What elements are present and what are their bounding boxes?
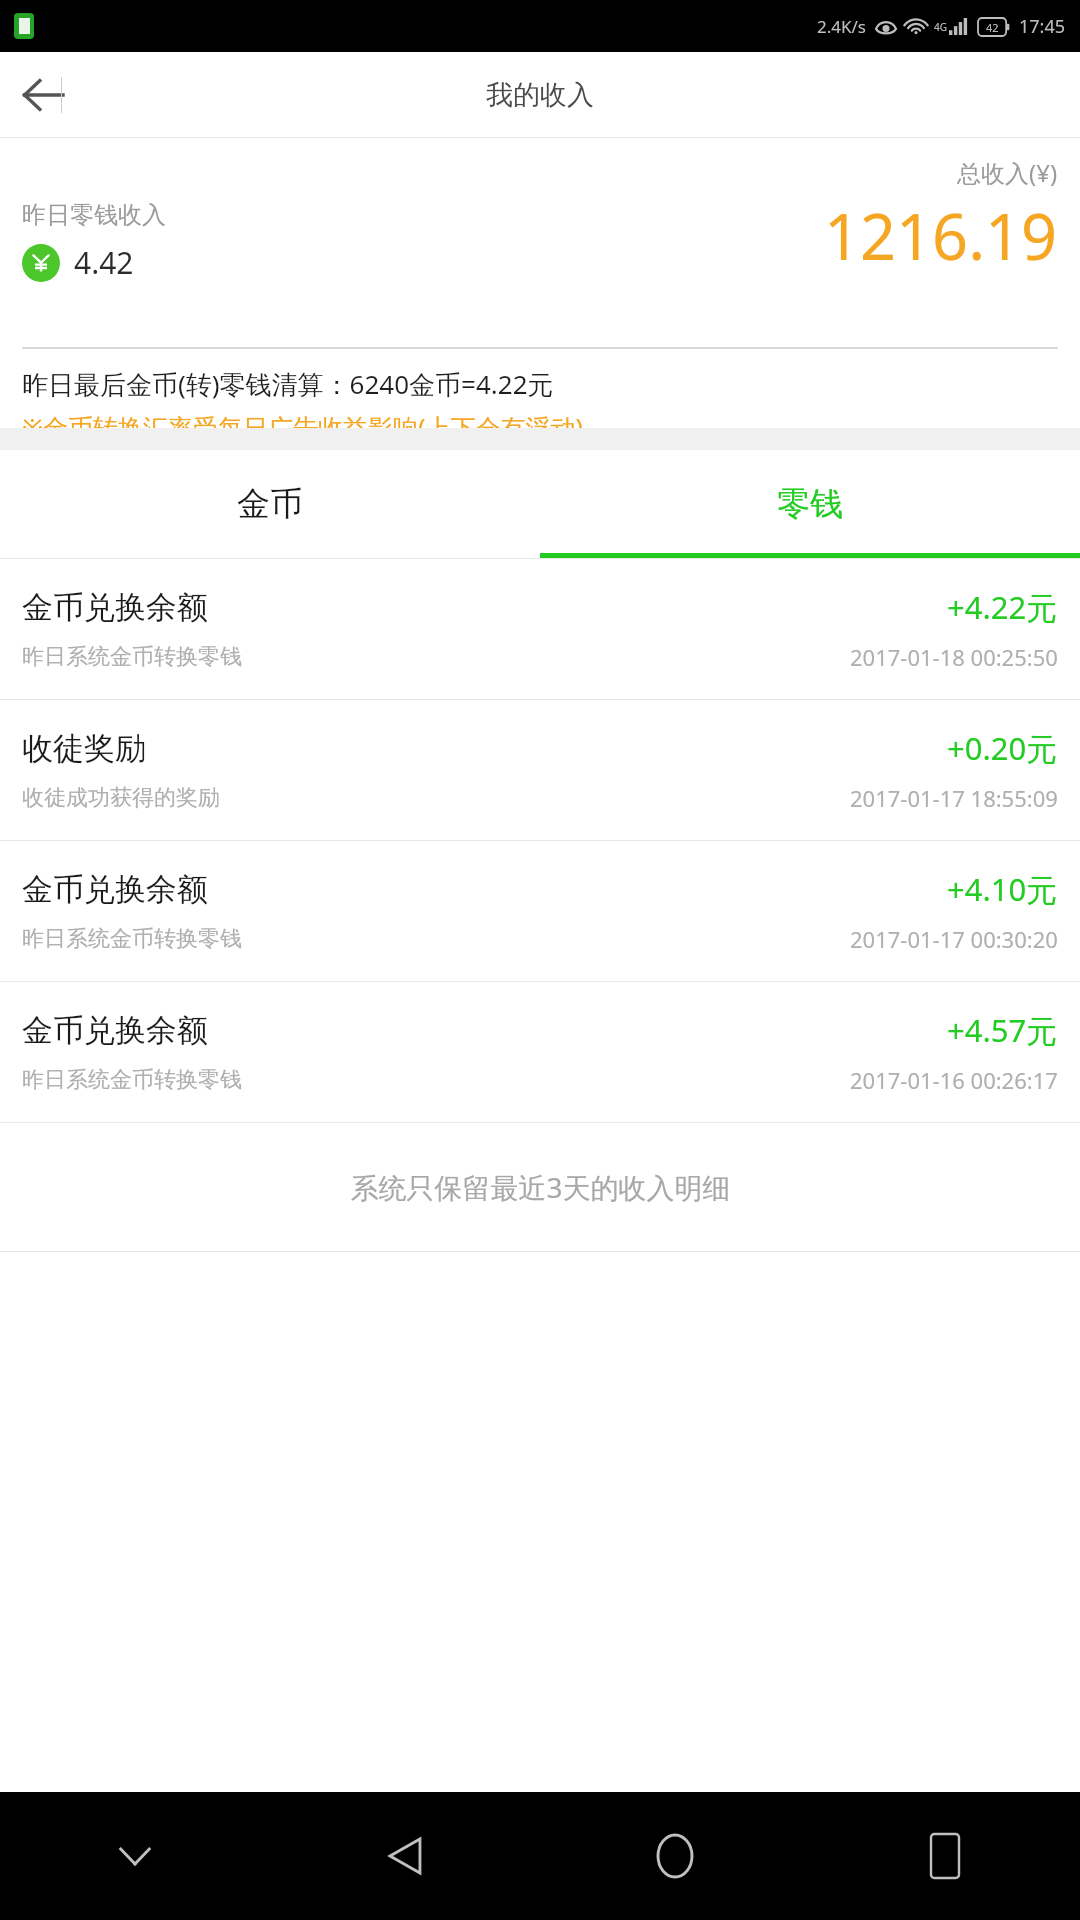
staticText: 收徒成功获得的奖励	[22, 784, 220, 812]
staticText: 17:45	[1019, 14, 1066, 39]
staticText: 2017-01-18 00:25:50	[850, 642, 1058, 672]
staticText: 2.4K/s	[817, 15, 866, 38]
staticText: 昨日最后金币(转)零钱清算：6240金币=4.22元	[22, 366, 554, 402]
button[interactable]: Back	[0, 52, 86, 138]
staticText: 2017-01-16 00:26:17	[850, 1065, 1058, 1095]
staticText: +4.22元	[947, 586, 1058, 628]
staticText: 2017-01-17 18:55:09	[850, 783, 1058, 813]
staticText: 收徒奖励	[22, 729, 146, 768]
button[interactable]: Back	[270, 1792, 540, 1920]
staticText: 总收入(¥)	[957, 156, 1058, 189]
staticText: +4.57元	[947, 1009, 1058, 1051]
button[interactable]: 金币兑换余额	[0, 841, 1080, 982]
staticText: +4.10元	[947, 868, 1058, 910]
staticText: ※金币转换汇率受每日广告收益影响(上下会有浮动)	[22, 410, 583, 444]
staticText: 昨日系统金币转换零钱	[22, 643, 242, 671]
button[interactable]: Hide keyboard	[0, 1792, 270, 1920]
staticText: 金币	[237, 483, 303, 525]
button[interactable]: Recent apps	[810, 1792, 1080, 1920]
button[interactable]: 零钱	[540, 450, 1080, 558]
staticText: 4G	[934, 20, 947, 34]
staticText: 昨日零钱收入	[22, 200, 166, 230]
staticText: 4.42	[74, 242, 134, 283]
staticText: 金币兑换余额	[22, 588, 208, 627]
staticText: 42	[986, 20, 999, 35]
staticText: 零钱	[777, 483, 843, 525]
staticText: 金币兑换余额	[22, 1011, 208, 1050]
staticText: 2017-01-17 00:30:20	[850, 924, 1058, 954]
staticText: 昨日系统金币转换零钱	[22, 925, 242, 953]
staticText: 系统只保留最近3天的收入明细	[350, 1168, 731, 1206]
staticText: 昨日系统金币转换零钱	[22, 1066, 242, 1094]
staticText: 1216.19	[824, 193, 1058, 279]
button[interactable]: 收徒奖励	[0, 700, 1080, 841]
button[interactable]: 金币兑换余额	[0, 982, 1080, 1123]
staticText: +0.20元	[947, 727, 1058, 769]
button[interactable]: 金币兑换余额	[0, 559, 1080, 700]
button[interactable]: 金币	[0, 450, 540, 558]
button[interactable]: Home	[540, 1792, 810, 1920]
staticText: 金币兑换余额	[22, 870, 208, 909]
staticText: 我的收入	[486, 78, 594, 112]
